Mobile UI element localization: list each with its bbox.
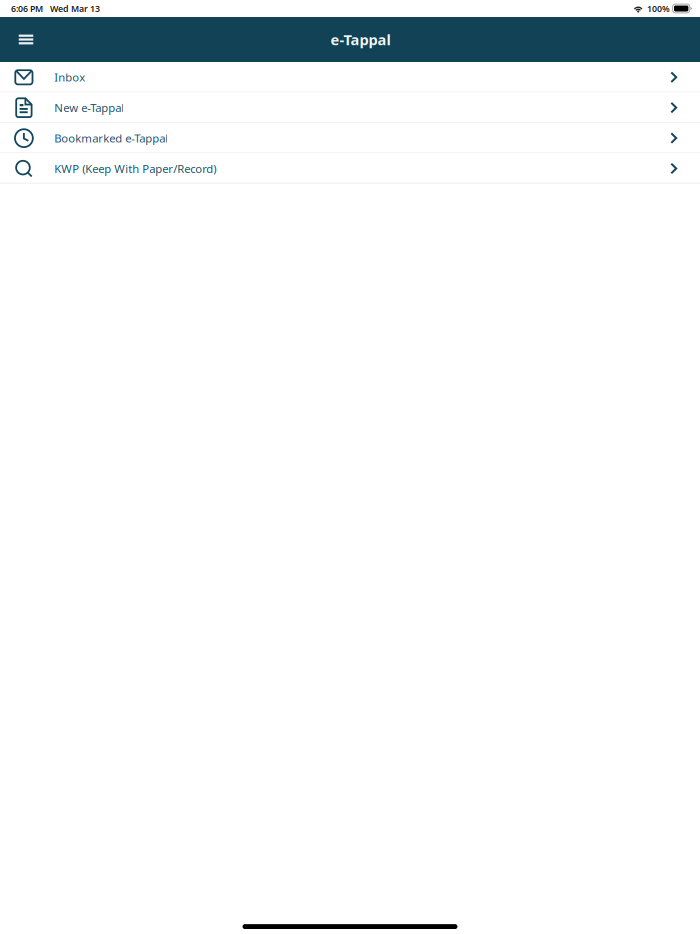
staticText: 6:06 PM — [11, 2, 43, 14]
staticText: e-Tappal — [330, 29, 390, 49]
staticText: 100% — [647, 2, 670, 14]
button[interactable]: New e-Tappal — [0, 92, 700, 123]
button[interactable]: Bookmarked e-Tappal — [0, 123, 700, 153]
staticText: Bookmarked e-Tappal — [54, 130, 168, 146]
button[interactable]: KWP (Keep With Paper/Record) — [0, 153, 700, 184]
button[interactable]: Inbox — [0, 62, 700, 92]
button[interactable]: Menu — [9, 19, 43, 59]
staticText: KWP (Keep With Paper/Record) — [54, 161, 216, 176]
staticText: New e-Tappal — [54, 100, 124, 115]
staticText: Inbox — [54, 69, 85, 85]
staticText: Wed Mar 13 — [50, 2, 100, 14]
